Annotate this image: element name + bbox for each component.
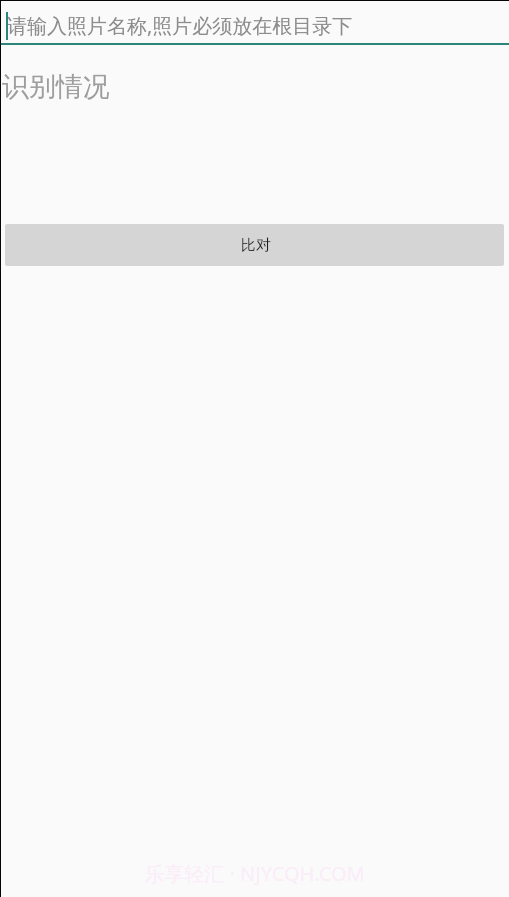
button[interactable]: 照片名称输入框: [0, 0, 509, 45]
staticText: 比对: [241, 236, 271, 255]
staticText: 识别情况: [2, 70, 110, 104]
staticText: 乐享轻汇 · NJYCQH.COM: [0, 860, 509, 887]
button[interactable]: 比对: [5, 224, 504, 266]
staticText: 请输入照片名称,照片必须放在根目录下: [7, 12, 353, 39]
